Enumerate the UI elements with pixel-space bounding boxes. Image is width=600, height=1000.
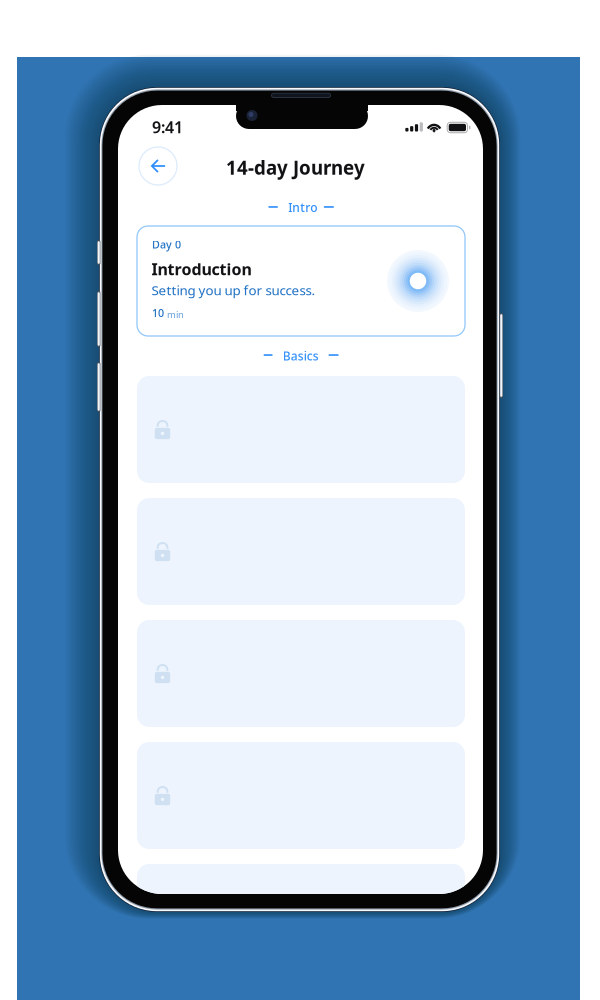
staticText: Intro [288, 199, 317, 215]
staticText: min [167, 308, 184, 321]
staticText: 9:41 [152, 116, 183, 138]
staticText: Introduction [152, 258, 252, 279]
button[interactable]: Day 0 [137, 226, 465, 336]
staticText: 10 [152, 306, 164, 320]
staticText: 14-day Journey [226, 155, 365, 180]
staticText: Basics [283, 348, 319, 364]
staticText: Setting you up for success. [152, 281, 316, 299]
button[interactable]: Locked lesson [137, 864, 465, 894]
button[interactable]: Back [139, 147, 177, 185]
staticText: Day 0 [152, 237, 181, 252]
